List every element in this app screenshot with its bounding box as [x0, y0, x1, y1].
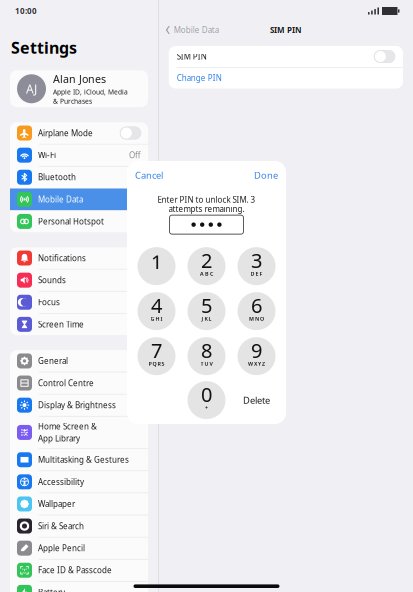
staticText: G H I — [150, 315, 162, 322]
button[interactable]: 2 — [181, 244, 231, 289]
button[interactable]: 0 — [181, 378, 231, 423]
button[interactable]: General — [10, 350, 148, 372]
staticText: + — [205, 404, 208, 411]
staticText: Home Screen & — [38, 421, 97, 432]
staticText: 0 — [201, 381, 212, 408]
staticText: Battery — [38, 587, 65, 592]
button[interactable]: 3 — [231, 244, 281, 289]
staticText: Siri & Search — [38, 521, 84, 531]
button[interactable]: Multitasking & Gestures — [10, 449, 148, 470]
button[interactable]: Sounds — [10, 269, 148, 291]
staticText: SIM PIN — [270, 25, 302, 35]
button[interactable]: Cancel — [135, 169, 163, 181]
staticText: 7 — [151, 337, 162, 364]
staticText: Screen Time — [38, 319, 84, 330]
button[interactable]: Face ID & Passcode — [10, 559, 148, 581]
staticText: Cancel — [135, 169, 163, 181]
button[interactable]: 6 — [231, 289, 281, 334]
staticText: Display & Brightness — [38, 400, 116, 410]
button[interactable]: Change PIN — [169, 67, 403, 88]
staticText: Airplane Mode — [38, 128, 93, 138]
staticText: 10:00 — [15, 6, 37, 16]
staticText: Control Centre — [38, 378, 94, 388]
staticText: T U V — [200, 360, 212, 367]
staticText: Sounds — [38, 275, 66, 285]
staticText: SIM PIN — [177, 51, 207, 62]
staticText: D E F — [250, 270, 262, 277]
button[interactable]: 7 — [131, 334, 181, 379]
button[interactable]: SIM PIN — [169, 46, 403, 67]
button[interactable]: Screen Time — [10, 313, 148, 335]
staticText: & Purchases — [53, 97, 92, 106]
button[interactable]: 4 — [131, 289, 181, 334]
staticText: Wi-Fi — [38, 150, 56, 160]
button[interactable]: Apple Pencil — [10, 537, 148, 559]
button[interactable]: Airplane Mode — [10, 122, 148, 144]
staticText: A B C — [200, 270, 213, 277]
staticText: Face ID & Passcode — [38, 565, 112, 575]
staticText: Settings — [11, 37, 77, 58]
staticText: 8 — [201, 337, 212, 364]
staticText: P Q R S — [148, 360, 164, 367]
staticText: AJ — [26, 81, 37, 97]
button[interactable]: Home Screen & — [10, 416, 148, 448]
button[interactable]: 5 — [181, 289, 231, 334]
staticText: Focus — [38, 297, 60, 307]
staticText: Apple Pencil — [38, 543, 85, 553]
staticText: 1 — [151, 248, 162, 275]
button[interactable]: Control Centre — [10, 372, 148, 394]
staticText: Delete — [243, 394, 270, 406]
button[interactable]: Accessibility — [10, 471, 148, 493]
staticText: Accessibility — [38, 476, 84, 487]
staticText: General — [38, 356, 68, 366]
button[interactable]: Mobile Data — [166, 25, 219, 35]
staticText: App Library — [38, 433, 80, 444]
staticText: 9 — [251, 337, 262, 364]
button[interactable]: 8 — [181, 334, 231, 379]
staticText: Personal Hotspot — [38, 216, 104, 227]
staticText: Mobile Data — [38, 194, 83, 205]
button[interactable]: Delete — [231, 379, 281, 422]
button[interactable]: Wallpaper — [10, 493, 148, 515]
button[interactable]: 1 — [131, 244, 181, 289]
staticText: 2 — [201, 247, 212, 274]
button[interactable]: Bluetooth — [10, 166, 148, 188]
button[interactable]: Personal Hotspot — [10, 211, 148, 232]
staticText: Alan Jones — [53, 72, 106, 86]
button[interactable]: Focus — [10, 291, 148, 313]
staticText: Enter PIN to unlock SIM. 3 — [157, 194, 255, 205]
staticText: Mobile Data — [174, 25, 219, 35]
staticText: Bluetooth — [38, 172, 76, 182]
staticText: 4 — [151, 292, 162, 319]
staticText: Change PIN — [177, 73, 222, 83]
staticText: 3 — [251, 247, 262, 274]
staticText: Off — [129, 150, 141, 160]
staticText: 6 — [251, 292, 262, 319]
button[interactable]: Wi-Fi — [10, 144, 148, 166]
button[interactable]: Siri & Search — [10, 515, 148, 537]
button[interactable]: Battery — [10, 581, 148, 592]
staticText: Apple ID, iCloud, Media — [53, 87, 128, 96]
staticText: Notifications — [38, 253, 86, 263]
staticText: Wallpaper — [38, 499, 75, 509]
button[interactable]: Mobile Data — [10, 188, 148, 210]
staticText: attempts remaining. — [168, 203, 244, 214]
button[interactable]: Notifications — [10, 247, 148, 269]
button[interactable]: 9 — [231, 334, 281, 379]
staticText: J K L — [201, 315, 211, 322]
staticText: M N O — [249, 315, 264, 322]
button[interactable]: AJ — [10, 70, 148, 107]
button[interactable]: Done — [254, 169, 278, 181]
staticText: 5 — [201, 292, 212, 319]
staticText: W X Y Z — [248, 360, 265, 367]
staticText: Multitasking & Gestures — [38, 454, 129, 465]
staticText: Done — [254, 169, 278, 181]
button[interactable]: Display & Brightness — [10, 394, 148, 416]
